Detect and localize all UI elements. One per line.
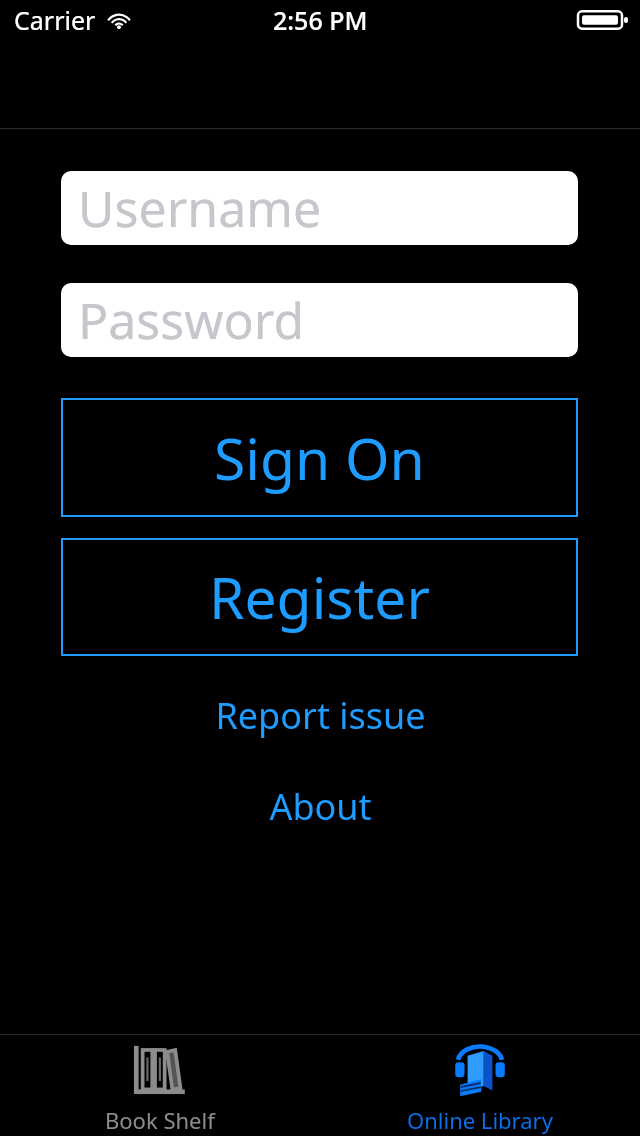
button[interactable]: Book Shelf	[0, 1035, 320, 1136]
staticText: About	[269, 782, 372, 831]
staticText: Book Shelf	[105, 1105, 215, 1135]
staticText: Password	[78, 286, 305, 354]
button[interactable]: Sign On	[61, 398, 578, 517]
staticText: Register	[209, 558, 430, 636]
button[interactable]: Report issue	[0, 690, 640, 740]
staticText: Online Library	[407, 1105, 553, 1135]
other: Book Shelf	[129, 1043, 191, 1101]
staticText: Carrier	[14, 3, 96, 37]
staticText: Username	[78, 174, 322, 242]
staticText: Sign On	[214, 419, 425, 497]
staticText: Report issue	[215, 691, 426, 740]
button[interactable]: Register	[61, 538, 578, 656]
staticText: 2:56 PM	[273, 3, 368, 37]
button[interactable]: Username	[61, 171, 578, 245]
button[interactable]: About	[0, 781, 640, 831]
button[interactable]: Password	[61, 283, 578, 357]
button[interactable]: Online Library	[320, 1035, 640, 1136]
other: Online Library	[449, 1043, 511, 1101]
